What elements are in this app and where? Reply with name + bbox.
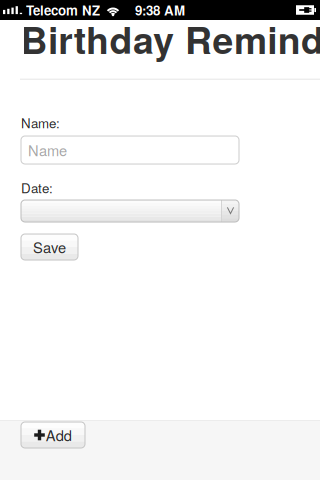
staticText: 9:38 AM bbox=[135, 0, 185, 20]
staticText: Birthday Reminder bbox=[20, 12, 320, 65]
button[interactable]: Add bbox=[21, 422, 85, 448]
staticText: Telecom NZ bbox=[26, 0, 100, 20]
button[interactable]: Save bbox=[21, 234, 78, 260]
staticText: Date: bbox=[21, 178, 53, 197]
staticText: Save bbox=[33, 236, 66, 257]
staticText: Name: bbox=[21, 113, 60, 132]
button[interactable] bbox=[21, 200, 239, 222]
staticText: Add bbox=[46, 424, 72, 445]
staticText: Name bbox=[28, 139, 67, 160]
